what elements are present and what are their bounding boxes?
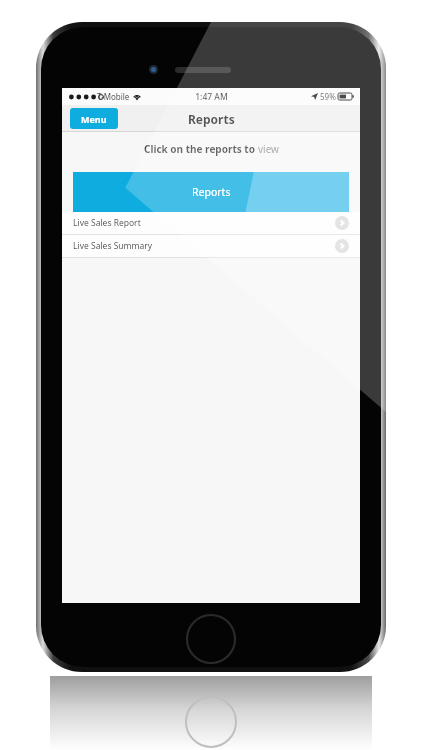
staticText: T-Mobile (97, 91, 130, 102)
staticText: Reports (192, 185, 231, 199)
staticText: 1:47 AM (195, 91, 228, 103)
staticText: Click on the reports to (144, 142, 258, 156)
button[interactable]: Live Sales Report (62, 212, 360, 234)
other: Open Live Sales Report (335, 216, 349, 230)
staticText: 59% (320, 91, 336, 102)
other: Open Live Sales Summary (335, 239, 349, 253)
button[interactable]: Reports (73, 172, 349, 212)
staticText: Live Sales Report (73, 217, 141, 229)
staticText: Live Sales Summary (73, 240, 153, 252)
staticText: view (258, 142, 279, 156)
staticText: Reports (188, 111, 235, 127)
staticText: Menu (81, 113, 107, 125)
button[interactable]: Menu (70, 108, 118, 129)
button[interactable]: Live Sales Summary (62, 235, 360, 257)
